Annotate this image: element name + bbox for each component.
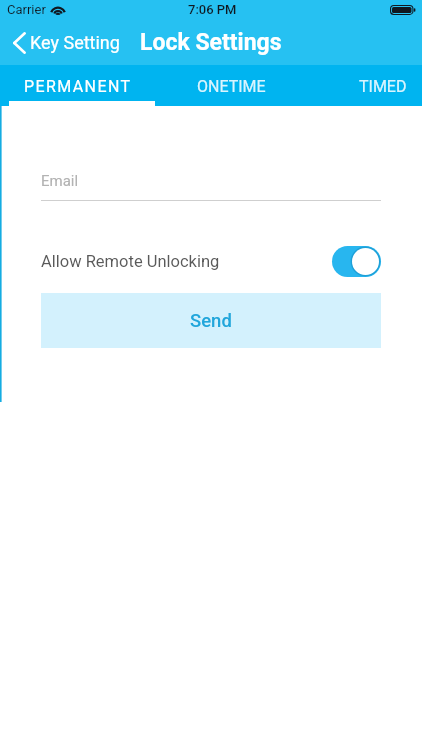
staticText: PERMANENT bbox=[24, 77, 132, 96]
button[interactable]: ONETIME bbox=[173, 65, 289, 106]
staticText: Key Setting bbox=[30, 32, 120, 53]
staticText: Carrier bbox=[7, 2, 46, 17]
staticText: Email bbox=[41, 172, 79, 190]
staticText: Allow Remote Unlocking bbox=[41, 252, 220, 271]
staticText: Send bbox=[190, 310, 232, 332]
staticText: TIMED bbox=[359, 77, 407, 96]
other: Back bbox=[13, 32, 26, 54]
button[interactable]: Send bbox=[41, 293, 381, 348]
staticText: ONETIME bbox=[197, 77, 266, 96]
button[interactable]: Allow remote unlocking toggle bbox=[332, 246, 381, 277]
staticText: Lock Settings bbox=[140, 29, 282, 56]
staticText: 7:06 PM bbox=[188, 2, 237, 17]
button[interactable]: TIMED bbox=[336, 65, 422, 106]
button[interactable]: PERMANENT bbox=[2, 65, 154, 106]
button[interactable]: Back bbox=[0, 23, 132, 62]
